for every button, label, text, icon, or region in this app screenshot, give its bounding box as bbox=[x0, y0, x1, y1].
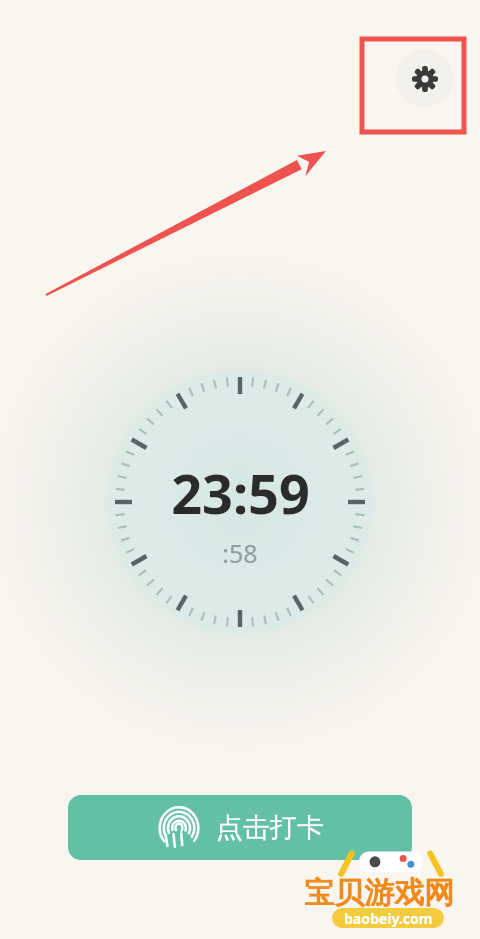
button[interactable]: Settings bbox=[396, 50, 453, 107]
staticText: 23:59 bbox=[171, 456, 310, 530]
button[interactable]: 点击打卡 bbox=[68, 795, 412, 860]
staticText: :58 bbox=[222, 536, 258, 570]
staticText: 点击打卡 bbox=[216, 811, 324, 845]
staticText: baobeiy.com bbox=[344, 909, 433, 928]
staticText: 宝贝游戏网 bbox=[304, 874, 454, 912]
